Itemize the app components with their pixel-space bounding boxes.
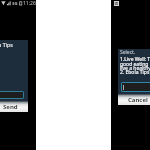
staticText: Select. [120, 49, 136, 56]
button[interactable]: Send [0, 101, 28, 112]
staticText: 11:26 [23, 0, 36, 7]
staticText: 3G [12, 1, 18, 7]
staticText: 1.Live Well: T good eating live a health… [120, 56, 150, 75]
other: Keyboard notification [114, 1, 119, 6]
staticText: Send [3, 103, 18, 111]
button[interactable]: Cancel [118, 94, 150, 105]
staticText: Ebola Tips [0, 41, 13, 48]
button[interactable]: Text input [121, 82, 150, 92]
button[interactable]: Message input [0, 91, 24, 99]
staticText: Cancel [128, 96, 148, 104]
